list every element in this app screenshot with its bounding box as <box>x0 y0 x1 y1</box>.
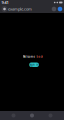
button[interactable]: Account <box>57 5 63 13</box>
button[interactable]: Recents <box>45 111 55 120</box>
staticText: Sign in <box>29 63 39 66</box>
staticText: 9:41 <box>1 0 8 5</box>
button[interactable]: Home <box>27 111 37 120</box>
button[interactable]: Back <box>8 111 18 120</box>
button[interactable]: Site information <box>1 5 8 13</box>
button[interactable]: Sign in <box>29 62 39 67</box>
staticText: example.com <box>8 6 32 12</box>
staticText: Welcome <box>23 55 36 58</box>
button[interactable]: Reload <box>51 5 57 13</box>
staticText: back <box>36 55 43 58</box>
